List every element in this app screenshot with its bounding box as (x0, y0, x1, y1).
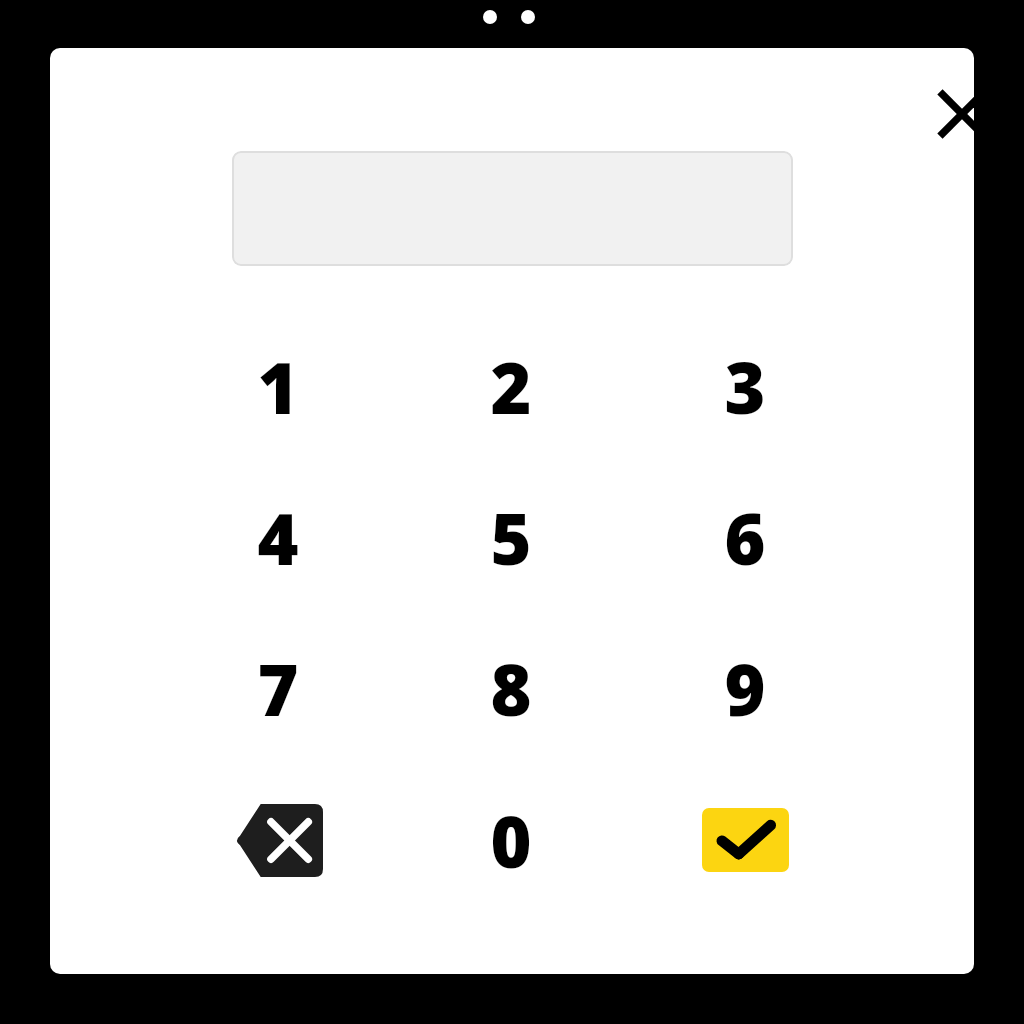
button[interactable]: PIN input field (232, 151, 793, 266)
staticText: 0 (490, 793, 532, 888)
staticText: 2 (490, 339, 532, 434)
staticText: 5 (490, 490, 532, 585)
staticText: 6 (724, 490, 766, 585)
button[interactable]: 9 (670, 632, 820, 744)
button[interactable]: 5 (436, 481, 586, 593)
button[interactable]: Confirm (670, 784, 820, 896)
button[interactable]: 6 (670, 481, 820, 593)
staticText: 9 (724, 641, 766, 736)
button[interactable]: 2 (436, 330, 586, 442)
staticText: 1 (257, 339, 299, 434)
button[interactable]: 7 (203, 632, 353, 744)
button[interactable]: 8 (436, 632, 586, 744)
staticText: 8 (490, 641, 532, 736)
button[interactable]: Backspace (203, 784, 353, 896)
button[interactable]: Close (916, 68, 974, 160)
staticText: 3 (724, 339, 766, 434)
staticText: 7 (257, 641, 299, 736)
button[interactable]: 3 (670, 330, 820, 442)
staticText: 4 (257, 490, 299, 585)
button[interactable]: 1 (203, 330, 353, 442)
button[interactable]: 0 (436, 784, 586, 896)
button[interactable]: 4 (203, 481, 353, 593)
